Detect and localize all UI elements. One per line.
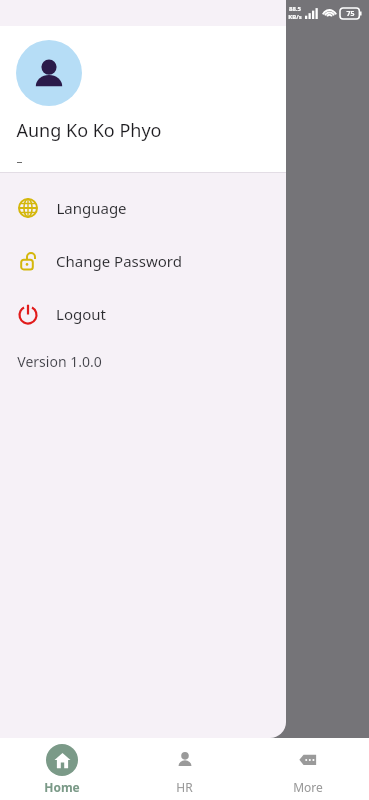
staticText: More bbox=[293, 779, 323, 795]
staticText: Logout bbox=[56, 304, 106, 324]
staticText: HR bbox=[176, 779, 193, 795]
button[interactable]: Home bbox=[0, 738, 123, 800]
staticText: Version 1.0.0 bbox=[17, 352, 102, 371]
button[interactable]: Language bbox=[0, 192, 286, 224]
button[interactable]: Logout bbox=[0, 298, 286, 330]
button[interactable]: Change Password bbox=[0, 245, 286, 277]
button[interactable]: HR bbox=[123, 738, 246, 800]
staticText: 75 bbox=[346, 9, 355, 19]
staticText: – bbox=[16, 153, 23, 169]
staticText: 88.5 bbox=[289, 5, 301, 13]
staticText: Change Password bbox=[56, 251, 182, 271]
button[interactable]: More bbox=[246, 738, 369, 800]
staticText: KB/s bbox=[288, 13, 302, 21]
staticText: Home bbox=[44, 779, 80, 795]
staticText: Language bbox=[56, 198, 127, 218]
staticText: Aung Ko Ko Phyo bbox=[16, 118, 162, 143]
